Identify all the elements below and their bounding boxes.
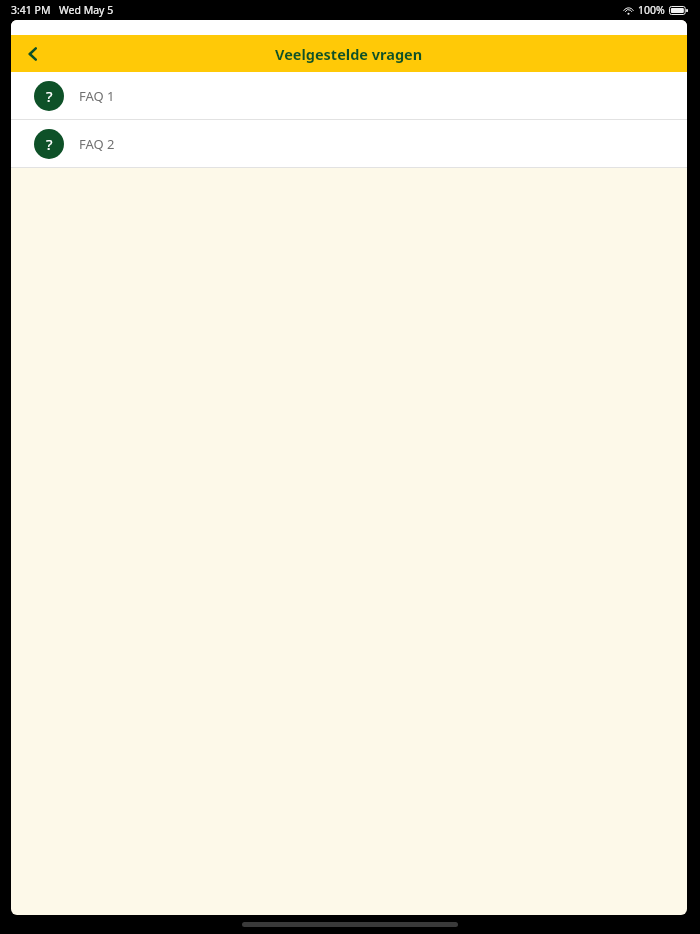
button[interactable]: Back: [11, 35, 55, 72]
staticText: 3:41 PM: [11, 3, 51, 17]
staticText: FAQ 2: [79, 135, 115, 153]
staticText: Wed May 5: [59, 3, 114, 17]
staticText: Veelgestelde vragen: [275, 44, 423, 64]
staticText: 100%: [638, 3, 665, 17]
staticText: FAQ 1: [79, 87, 115, 105]
button[interactable]: ?: [11, 72, 687, 119]
button[interactable]: ?: [11, 120, 687, 167]
staticText: ?: [46, 86, 53, 106]
staticText: ?: [46, 134, 53, 154]
